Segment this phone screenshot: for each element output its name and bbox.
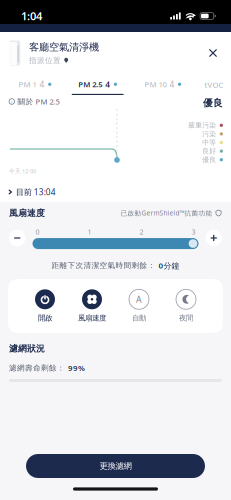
button[interactable]: Increase fan speed [205,230,222,246]
button[interactable]: 開啟 [23,289,67,323]
staticText: 夜間 [179,313,193,323]
staticText: i [11,99,12,104]
staticText: 0 [35,227,39,236]
button[interactable]: tVOC [202,75,226,95]
staticText: 指派位置 [29,56,61,65]
staticText: 已啟動GermShield™抗菌功能 [120,209,212,217]
button[interactable]: 更換濾網 [26,454,205,478]
button[interactable]: PM 2.5 [72,75,124,95]
staticText: tVOC [204,79,223,90]
staticText: 開啟 [38,313,52,323]
staticText: 客廳空氣清淨機 [29,41,99,54]
staticText: 1:04 [21,8,42,24]
staticText: 濾網狀況 [9,343,45,354]
staticText: 99% [68,363,85,373]
staticText: 更換濾網 [99,461,131,471]
button[interactable]: Close [202,42,224,64]
staticText: PM 1 [19,79,37,89]
staticText: 目前 13:04 [16,186,56,198]
staticText: PM 10 [144,79,166,89]
staticText: 4 [105,79,110,90]
staticText: A [136,293,142,305]
button[interactable]: PM 10 [140,75,185,95]
staticText: 3 [191,227,195,236]
staticText: 嚴重污染 [188,121,216,130]
staticText: PM 2.5 [78,79,102,89]
staticText: 4 [169,79,174,90]
staticText: 良好 [202,147,216,155]
staticText: 2 [139,227,143,236]
staticText: 關於 PM 2.5 [17,96,59,107]
staticText: 0分鐘 [158,260,179,271]
button[interactable]: A [117,289,161,323]
button[interactable]: 夜間 [164,289,208,323]
staticText: 1 [87,227,91,236]
button[interactable]: PM 1 [15,75,55,95]
button[interactable]: 風扇速度 [70,289,114,323]
staticText: 距離下次清潔空氣時間剩餘： [51,261,155,270]
staticText: 優良 [203,97,223,109]
staticText: 自動 [132,313,146,323]
staticText: 4 [40,79,45,90]
staticText: 風扇速度 [78,313,106,323]
staticText: 濾網壽命剩餘： [9,363,65,373]
button[interactable]: Decrease fan speed [9,230,25,246]
staticText: 污染 [202,130,216,138]
staticText: 優良 [202,155,216,164]
staticText: 風扇速度 [9,207,45,219]
staticText: 今天 12:00 [9,167,36,175]
staticText: 中等 [202,138,216,147]
